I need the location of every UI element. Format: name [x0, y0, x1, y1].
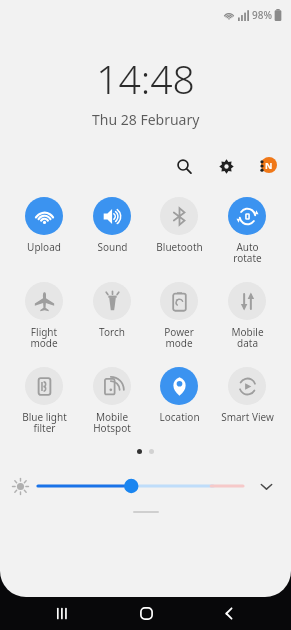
button[interactable]: Search	[169, 151, 199, 181]
button[interactable]: Mobile Hotspot	[80, 365, 144, 437]
button[interactable]: Location	[147, 365, 211, 426]
staticText: Torch	[99, 325, 125, 339]
staticText: Bluetooth	[156, 240, 203, 254]
button[interactable]: Smart View	[215, 365, 279, 426]
button[interactable]: Settings	[211, 151, 241, 181]
staticText: Mobile data	[231, 325, 264, 350]
staticText: Smart View	[221, 410, 274, 424]
staticText: Thu 28 February	[92, 110, 200, 129]
staticText: 98%	[252, 8, 272, 22]
button[interactable]	[38, 473, 243, 499]
button[interactable]: Bluetooth	[147, 195, 211, 256]
button[interactable]: Expand brightness settings	[253, 473, 279, 499]
staticText: Flight mode	[30, 325, 58, 350]
button[interactable]: Recent apps	[40, 597, 84, 630]
staticText: Mobile Hotspot	[93, 410, 131, 435]
button[interactable]: Torch	[80, 280, 144, 341]
button[interactable]: Back	[207, 597, 251, 630]
staticText: Blue light filter	[22, 410, 67, 435]
staticText: Sound	[97, 240, 128, 254]
button[interactable]: Auto rotate	[215, 195, 279, 267]
button[interactable]: Upload	[12, 195, 76, 256]
button[interactable]: More options	[251, 151, 281, 181]
staticText: Location	[159, 410, 200, 424]
staticText: N	[265, 159, 273, 171]
button[interactable]: Blue light filter	[12, 365, 76, 437]
staticText: Auto rotate	[233, 240, 262, 265]
button[interactable]: Sound	[80, 195, 144, 256]
button[interactable]: Home	[124, 597, 168, 630]
staticText: 14:48	[96, 52, 195, 105]
button[interactable]: Mobile data	[215, 280, 279, 352]
button[interactable]: Flight mode	[12, 280, 76, 352]
staticText: Power mode	[164, 325, 194, 350]
staticText: Upload	[27, 240, 61, 254]
button[interactable]: Power mode	[147, 280, 211, 352]
